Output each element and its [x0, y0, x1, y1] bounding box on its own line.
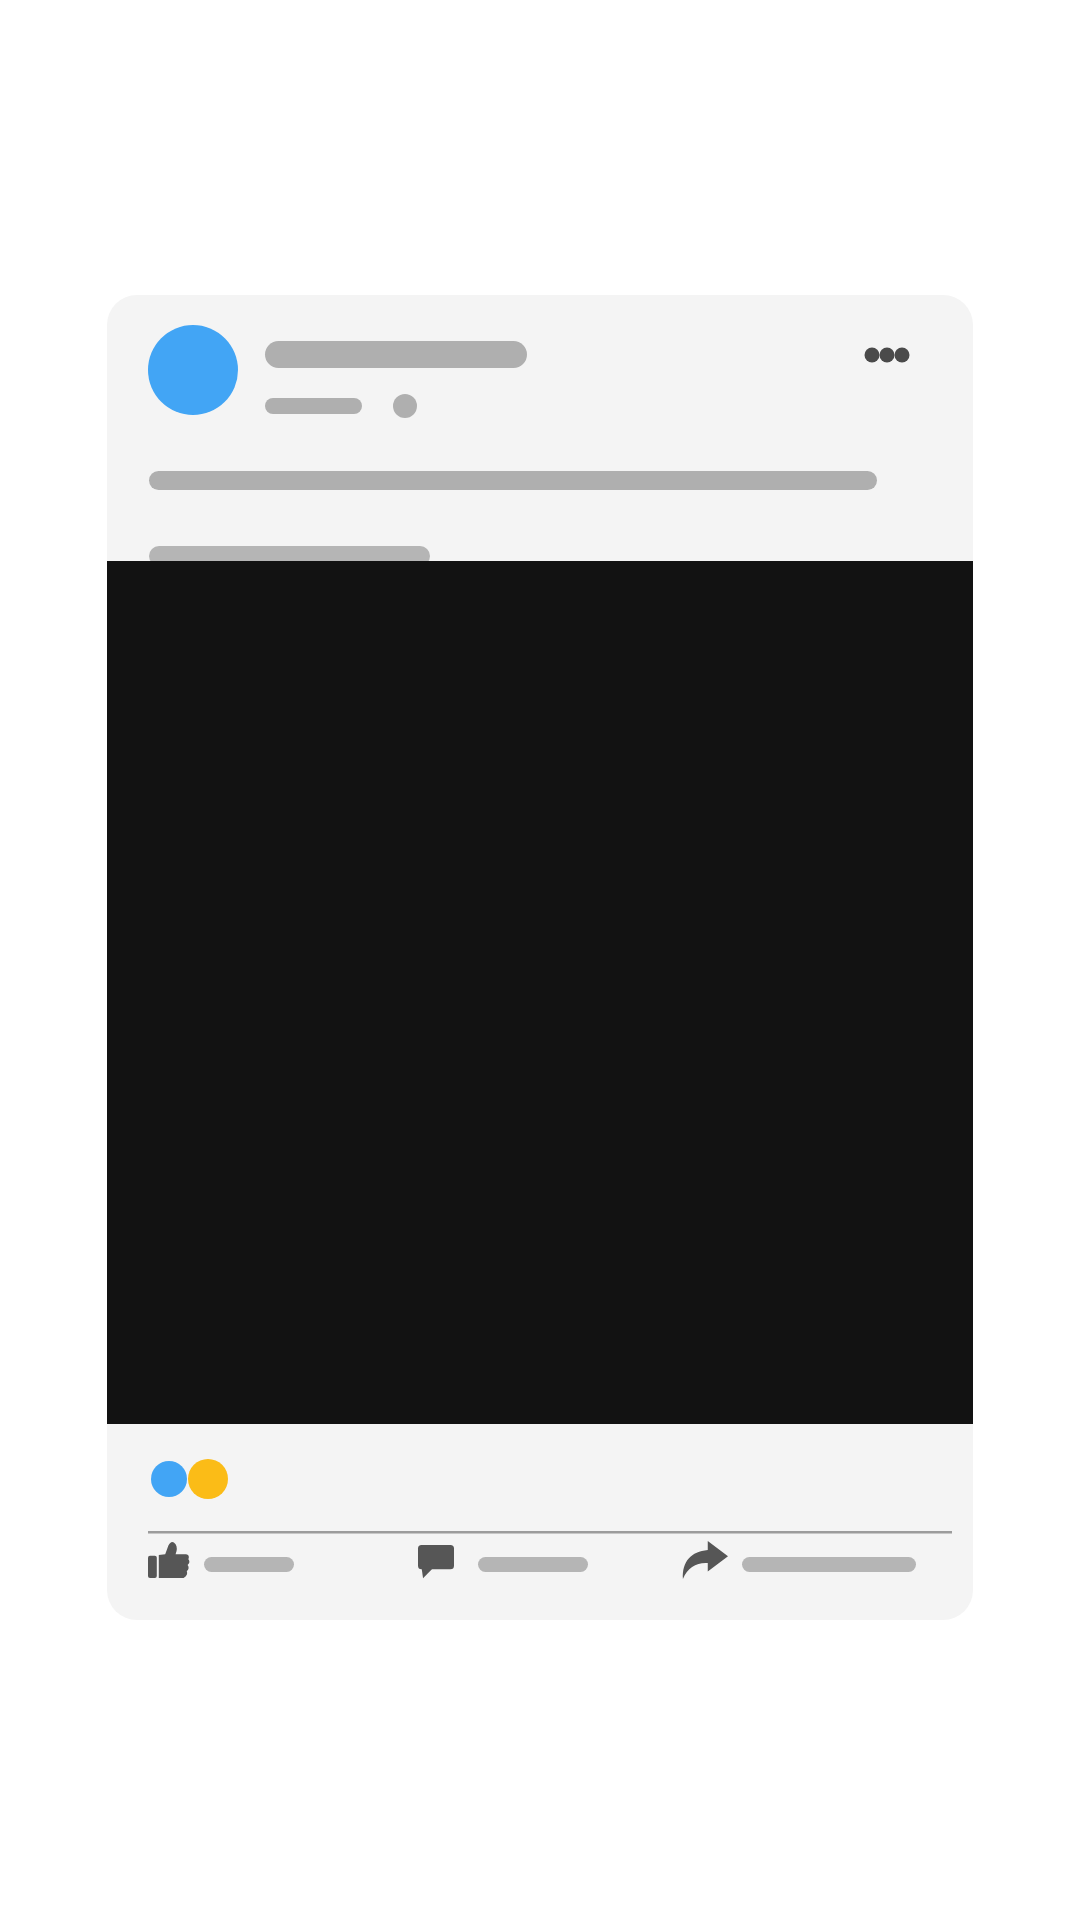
button[interactable]: Post author — [107, 295, 973, 495]
button[interactable]: Comment — [402, 1534, 664, 1614]
button[interactable]: Share — [666, 1534, 958, 1614]
button[interactable]: More options — [828, 318, 952, 396]
button[interactable]: Reactions — [132, 1442, 392, 1518]
button[interactable]: Like — [130, 1534, 402, 1614]
